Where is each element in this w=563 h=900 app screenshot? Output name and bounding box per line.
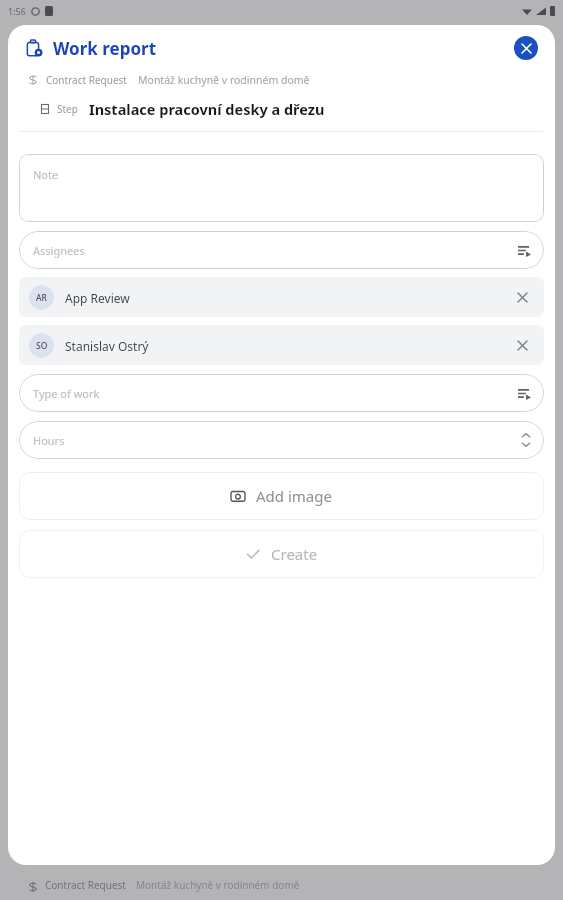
staticText: Note	[33, 167, 59, 182]
staticText: Instalace pracovní desky a dřezu	[89, 99, 325, 119]
staticText: AR	[36, 292, 47, 304]
staticText: Hours	[33, 433, 65, 448]
staticText: Assignees	[33, 243, 85, 258]
staticText: Montáž kuchyně v rodinném domě	[136, 878, 300, 892]
button[interactable]: Create	[19, 530, 544, 578]
staticText: Create	[271, 544, 318, 564]
button[interactable]: Assignees	[19, 231, 544, 269]
staticText: Type of work	[33, 386, 100, 401]
button[interactable]: AR	[19, 277, 544, 317]
staticText: Work report	[53, 37, 157, 60]
staticText: Contract Request	[45, 878, 126, 892]
button[interactable]: Remove Stanislav Ostrý	[513, 336, 531, 354]
staticText: Step	[57, 102, 78, 116]
button[interactable]: Hours	[19, 421, 544, 459]
button[interactable]: Add image	[19, 472, 544, 520]
button[interactable]: Close	[514, 36, 538, 60]
staticText: Contract Request	[46, 73, 127, 87]
button[interactable]: Remove App Review	[513, 288, 531, 306]
other: Select	[518, 387, 531, 400]
button[interactable]: Note	[19, 154, 544, 222]
staticText: Add image	[256, 486, 332, 506]
other: Increment	[521, 431, 531, 449]
staticText: SO	[36, 340, 48, 352]
other: Select	[518, 244, 531, 257]
button[interactable]: Type of work	[19, 374, 544, 412]
staticText: App Review	[65, 290, 130, 306]
staticText: Stanislav Ostrý	[65, 338, 149, 354]
staticText: 1:56	[8, 5, 26, 17]
button[interactable]: SO	[19, 325, 544, 365]
staticText: Montáž kuchyně v rodinném domě	[138, 73, 310, 87]
